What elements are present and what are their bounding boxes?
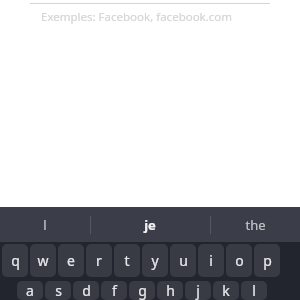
button[interactable]: t — [114, 244, 140, 277]
staticText: r — [96, 251, 102, 270]
staticText: d — [82, 281, 91, 300]
button[interactable]: a — [17, 281, 43, 300]
staticText: u — [179, 251, 188, 270]
button[interactable]: e — [58, 244, 84, 277]
staticText: y — [151, 251, 159, 270]
staticText: the — [245, 216, 266, 234]
button[interactable]: l — [241, 281, 267, 300]
button[interactable]: h — [157, 281, 183, 300]
button[interactable]: s — [45, 281, 71, 300]
staticText: g — [138, 281, 147, 300]
staticText: p — [263, 251, 272, 270]
button[interactable]: w — [30, 244, 56, 277]
staticText: o — [235, 251, 244, 270]
staticText: k — [222, 281, 230, 300]
staticText: h — [166, 281, 175, 300]
staticText: s — [55, 281, 62, 300]
staticText: i — [209, 251, 213, 270]
button[interactable]: q — [2, 244, 28, 277]
button[interactable]: o — [226, 244, 252, 277]
staticText: t — [124, 251, 130, 270]
button[interactable]: je — [90, 207, 210, 242]
button[interactable]: d — [73, 281, 99, 300]
staticText: je — [144, 216, 156, 234]
staticText: l — [43, 216, 47, 234]
button[interactable]: f — [101, 281, 127, 300]
button[interactable]: u — [170, 244, 196, 277]
button[interactable]: the — [210, 207, 300, 242]
button[interactable]: p — [254, 244, 280, 277]
staticText: a — [26, 281, 34, 300]
staticText: j — [196, 281, 200, 300]
button[interactable]: i — [198, 244, 224, 277]
staticText: Exemples: Facebook, facebook.com — [41, 9, 233, 25]
button[interactable]: g — [129, 281, 155, 300]
staticText: e — [67, 251, 75, 270]
staticText: f — [112, 281, 117, 300]
button[interactable]: l — [0, 207, 90, 242]
button[interactable]: j — [185, 281, 211, 300]
button[interactable]: k — [213, 281, 239, 300]
staticText: q — [11, 251, 20, 270]
staticText: w — [37, 251, 49, 270]
staticText: l — [252, 281, 256, 300]
button[interactable]: y — [142, 244, 168, 277]
button[interactable]: r — [86, 244, 112, 277]
